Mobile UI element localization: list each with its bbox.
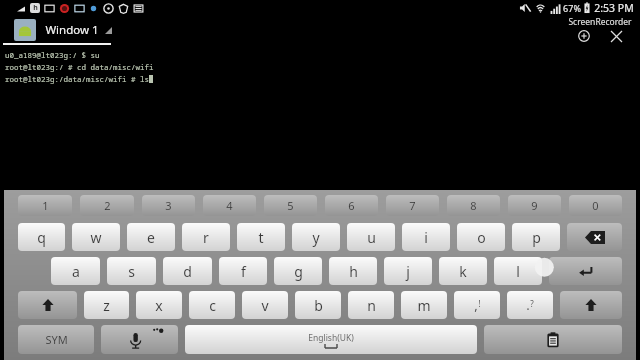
staticText: 5 — [287, 198, 294, 213]
button[interactable]: 9 — [508, 195, 561, 216]
button[interactable]: Voice input — [101, 325, 178, 354]
staticText: h — [349, 262, 358, 281]
staticText: z — [103, 296, 110, 315]
button[interactable]: Record — [576, 28, 592, 44]
button[interactable]: 3 — [142, 195, 195, 216]
button[interactable]: English(UK) — [185, 325, 477, 354]
staticText: English(UK) — [308, 332, 354, 344]
button[interactable]: Clipboard — [484, 325, 622, 354]
button[interactable]: n — [348, 291, 394, 319]
staticText: q — [37, 228, 46, 247]
button[interactable]: l — [494, 257, 542, 285]
staticText: 9 — [531, 198, 538, 213]
button[interactable]: Enter — [549, 257, 622, 285]
button[interactable]: j — [384, 257, 432, 285]
button[interactable]: u — [347, 223, 395, 251]
button[interactable]: 7 — [386, 195, 439, 216]
staticText: i — [424, 228, 428, 247]
button[interactable]: Window 1 — [14, 16, 112, 44]
staticText: . — [526, 296, 530, 314]
button[interactable]: a — [51, 257, 100, 285]
button[interactable]: b — [295, 291, 341, 319]
staticText: 0 — [592, 198, 599, 213]
staticText: 4 — [226, 198, 233, 213]
staticText: 8 — [470, 198, 477, 213]
button[interactable]: 1 — [18, 195, 72, 216]
staticText: ScreenRecorder — [568, 16, 632, 28]
button[interactable]: 2 — [80, 195, 134, 216]
button[interactable]: 6 — [325, 195, 378, 216]
staticText: m — [417, 296, 431, 315]
button[interactable]: y — [292, 223, 340, 251]
button[interactable]: m — [401, 291, 447, 319]
button[interactable]: d — [163, 257, 212, 285]
staticText: 6 — [348, 198, 355, 213]
staticText: a — [72, 262, 80, 281]
button[interactable]: i — [402, 223, 450, 251]
button[interactable]: s — [107, 257, 156, 285]
staticText: 2 — [104, 198, 111, 213]
staticText: l — [516, 262, 520, 281]
staticText: g — [294, 262, 303, 281]
staticText: Window 1 — [45, 22, 99, 38]
button[interactable]: 8 — [447, 195, 500, 216]
button[interactable]: z — [84, 291, 129, 319]
button[interactable]: q — [18, 223, 65, 251]
button[interactable]: o — [457, 223, 505, 251]
staticText: d — [183, 262, 192, 281]
button[interactable]: e — [127, 223, 175, 251]
button[interactable]: v — [242, 291, 288, 319]
staticText: s — [128, 262, 135, 281]
staticText: v — [261, 296, 269, 315]
staticText: y — [312, 228, 320, 247]
staticText: o — [477, 228, 486, 247]
staticText: n — [367, 296, 376, 315]
staticText: root@lt023g:/ # cd data/misc/wifi — [5, 62, 154, 72]
staticText: 7 — [409, 198, 416, 213]
button[interactable]: x — [136, 291, 182, 319]
button[interactable]: . — [507, 291, 553, 319]
staticText: , — [474, 296, 478, 314]
button[interactable]: k — [439, 257, 487, 285]
staticText: ? — [530, 298, 534, 309]
button[interactable]: w — [72, 223, 120, 251]
button[interactable]: c — [189, 291, 235, 319]
button[interactable]: , — [454, 291, 500, 319]
button[interactable]: 0 — [569, 195, 622, 216]
button[interactable]: Close — [608, 28, 624, 44]
button[interactable]: t — [237, 223, 285, 251]
button[interactable]: p — [512, 223, 560, 251]
staticText: p — [532, 228, 541, 247]
staticText: 3 — [165, 198, 172, 213]
button[interactable]: 4 — [203, 195, 256, 216]
button[interactable]: r — [182, 223, 230, 251]
staticText: x — [155, 296, 163, 315]
staticText: SYM — [45, 332, 68, 347]
staticText: 1 — [42, 198, 49, 213]
button[interactable]: 5 — [264, 195, 317, 216]
button[interactable]: f — [219, 257, 267, 285]
staticText: 2:53 PM — [594, 1, 634, 15]
staticText: k — [459, 262, 467, 281]
staticText: h — [33, 3, 38, 13]
staticText: b — [314, 296, 323, 315]
button[interactable]: Backspace — [567, 223, 622, 251]
staticText: w — [90, 228, 102, 247]
staticText: c — [209, 296, 216, 315]
staticText: u0_a189@lt023g:/ $ su — [5, 50, 100, 60]
staticText: u — [367, 228, 376, 247]
staticText: r — [203, 228, 209, 247]
button[interactable]: SYM — [18, 325, 94, 354]
staticText: j — [406, 262, 410, 281]
staticText: e — [147, 228, 155, 247]
button[interactable]: Shift — [18, 291, 77, 319]
staticText: ! — [478, 298, 481, 309]
button[interactable]: h — [329, 257, 377, 285]
staticText: root@lt023g:/data/misc/wifi # ls — [5, 74, 149, 84]
staticText: f — [241, 262, 246, 281]
staticText: 67% — [563, 2, 581, 14]
staticText: t — [258, 228, 264, 247]
button[interactable]: g — [274, 257, 322, 285]
button[interactable]: Shift — [560, 291, 622, 319]
